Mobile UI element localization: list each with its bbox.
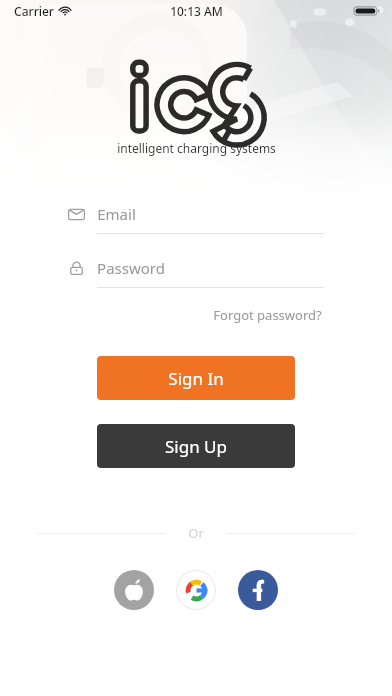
staticText: Sign Up bbox=[165, 435, 227, 458]
staticText: intelligent charging systems bbox=[117, 140, 276, 156]
staticText: Carrier bbox=[14, 3, 54, 19]
staticText: Password bbox=[97, 258, 165, 278]
staticText: Or bbox=[188, 524, 204, 542]
staticText: 10:13 AM bbox=[170, 3, 223, 19]
button[interactable]: Sign Up bbox=[97, 424, 295, 468]
button[interactable]: Sign In bbox=[97, 356, 295, 400]
button[interactable]: Forgot password? bbox=[211, 302, 324, 328]
button[interactable]: Password bbox=[68, 258, 324, 288]
button[interactable]: Email bbox=[68, 204, 324, 234]
button[interactable]: Sign in with Facebook bbox=[238, 570, 278, 610]
staticText: Sign In bbox=[168, 367, 224, 390]
staticText: Email bbox=[97, 204, 136, 224]
button[interactable]: Sign in with Apple bbox=[114, 570, 154, 610]
button[interactable]: Sign in with Google bbox=[176, 570, 216, 610]
staticText: Forgot password? bbox=[213, 306, 322, 324]
